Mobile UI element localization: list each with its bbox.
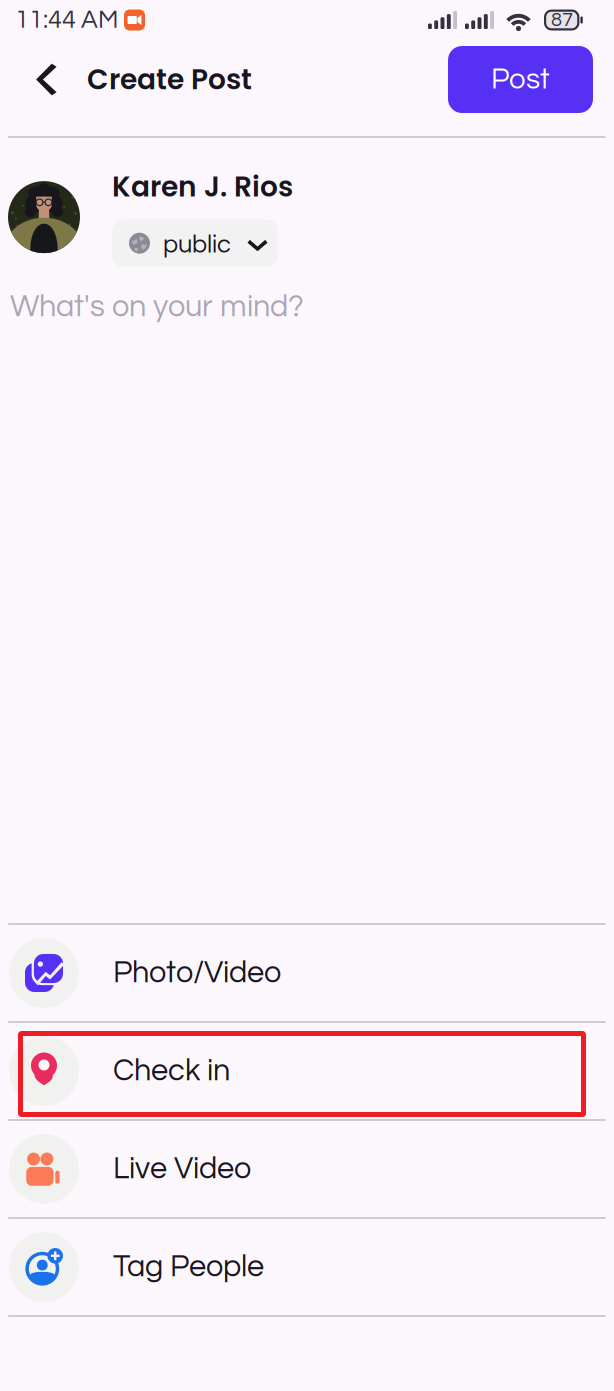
button[interactable]: Tag People bbox=[0, 1219, 614, 1315]
button[interactable]: public bbox=[112, 219, 278, 267]
staticText: Check in bbox=[113, 1055, 230, 1087]
staticText: Live Video bbox=[113, 1153, 251, 1185]
button[interactable]: Check in bbox=[0, 1023, 614, 1119]
staticText: 87 bbox=[551, 10, 573, 30]
staticText: Create Post bbox=[87, 60, 252, 99]
staticText: What's on your mind? bbox=[10, 291, 304, 323]
button[interactable]: Back bbox=[25, 50, 73, 108]
staticText: Post bbox=[491, 64, 550, 95]
staticText: public bbox=[163, 232, 231, 258]
staticText: Photo/Video bbox=[113, 957, 281, 989]
button[interactable]: Post bbox=[448, 46, 593, 113]
staticText: Tag People bbox=[113, 1251, 264, 1283]
staticText: 11:44 AM bbox=[15, 7, 118, 33]
button[interactable]: Live Video bbox=[0, 1121, 614, 1217]
button[interactable]: Photo/Video bbox=[0, 925, 614, 1021]
staticText: Karen J. Rios bbox=[112, 167, 293, 206]
